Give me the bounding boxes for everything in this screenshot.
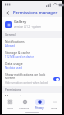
button[interactable]: Privacy [32,97,47,110]
staticText: Notifications [5,39,25,43]
button[interactable]: Show notifications on lock screen [2,71,62,86]
button[interactable]: Gallery [2,17,62,31]
staticText: Privacy [35,106,44,109]
button[interactable]: More [47,97,62,110]
button[interactable]: Apps [2,97,17,110]
button[interactable]: Back [4,9,12,17]
staticText: 112 MB used on device [5,55,34,59]
staticText: Data usage [5,61,23,65]
staticText: Manage storage [5,94,31,96]
staticText: Allowed [5,44,15,48]
staticText: Storage & cache [5,50,31,54]
staticText: Gallery [14,19,27,24]
staticText: More [51,106,58,109]
button[interactable]: Network [17,97,32,110]
staticText: No data used [5,66,22,70]
button[interactable]: Storage & cache [2,49,62,60]
button[interactable]: Manage storage [2,93,62,97]
staticText: Permissions [5,88,22,92]
button[interactable]: Toggle notifications on lock screen [53,77,60,81]
staticText: General [5,33,16,37]
staticText: version 4.1.2 · system [14,25,42,29]
staticText: Permissions manager [13,10,60,16]
staticText: Show notifications on lock screen [5,72,51,80]
staticText: Hide sensitive content when locked [5,81,48,85]
button[interactable]: Notifications [2,38,62,49]
button[interactable]: Data usage [2,60,62,71]
staticText: Network [19,106,30,109]
staticText: Apps [7,106,13,109]
